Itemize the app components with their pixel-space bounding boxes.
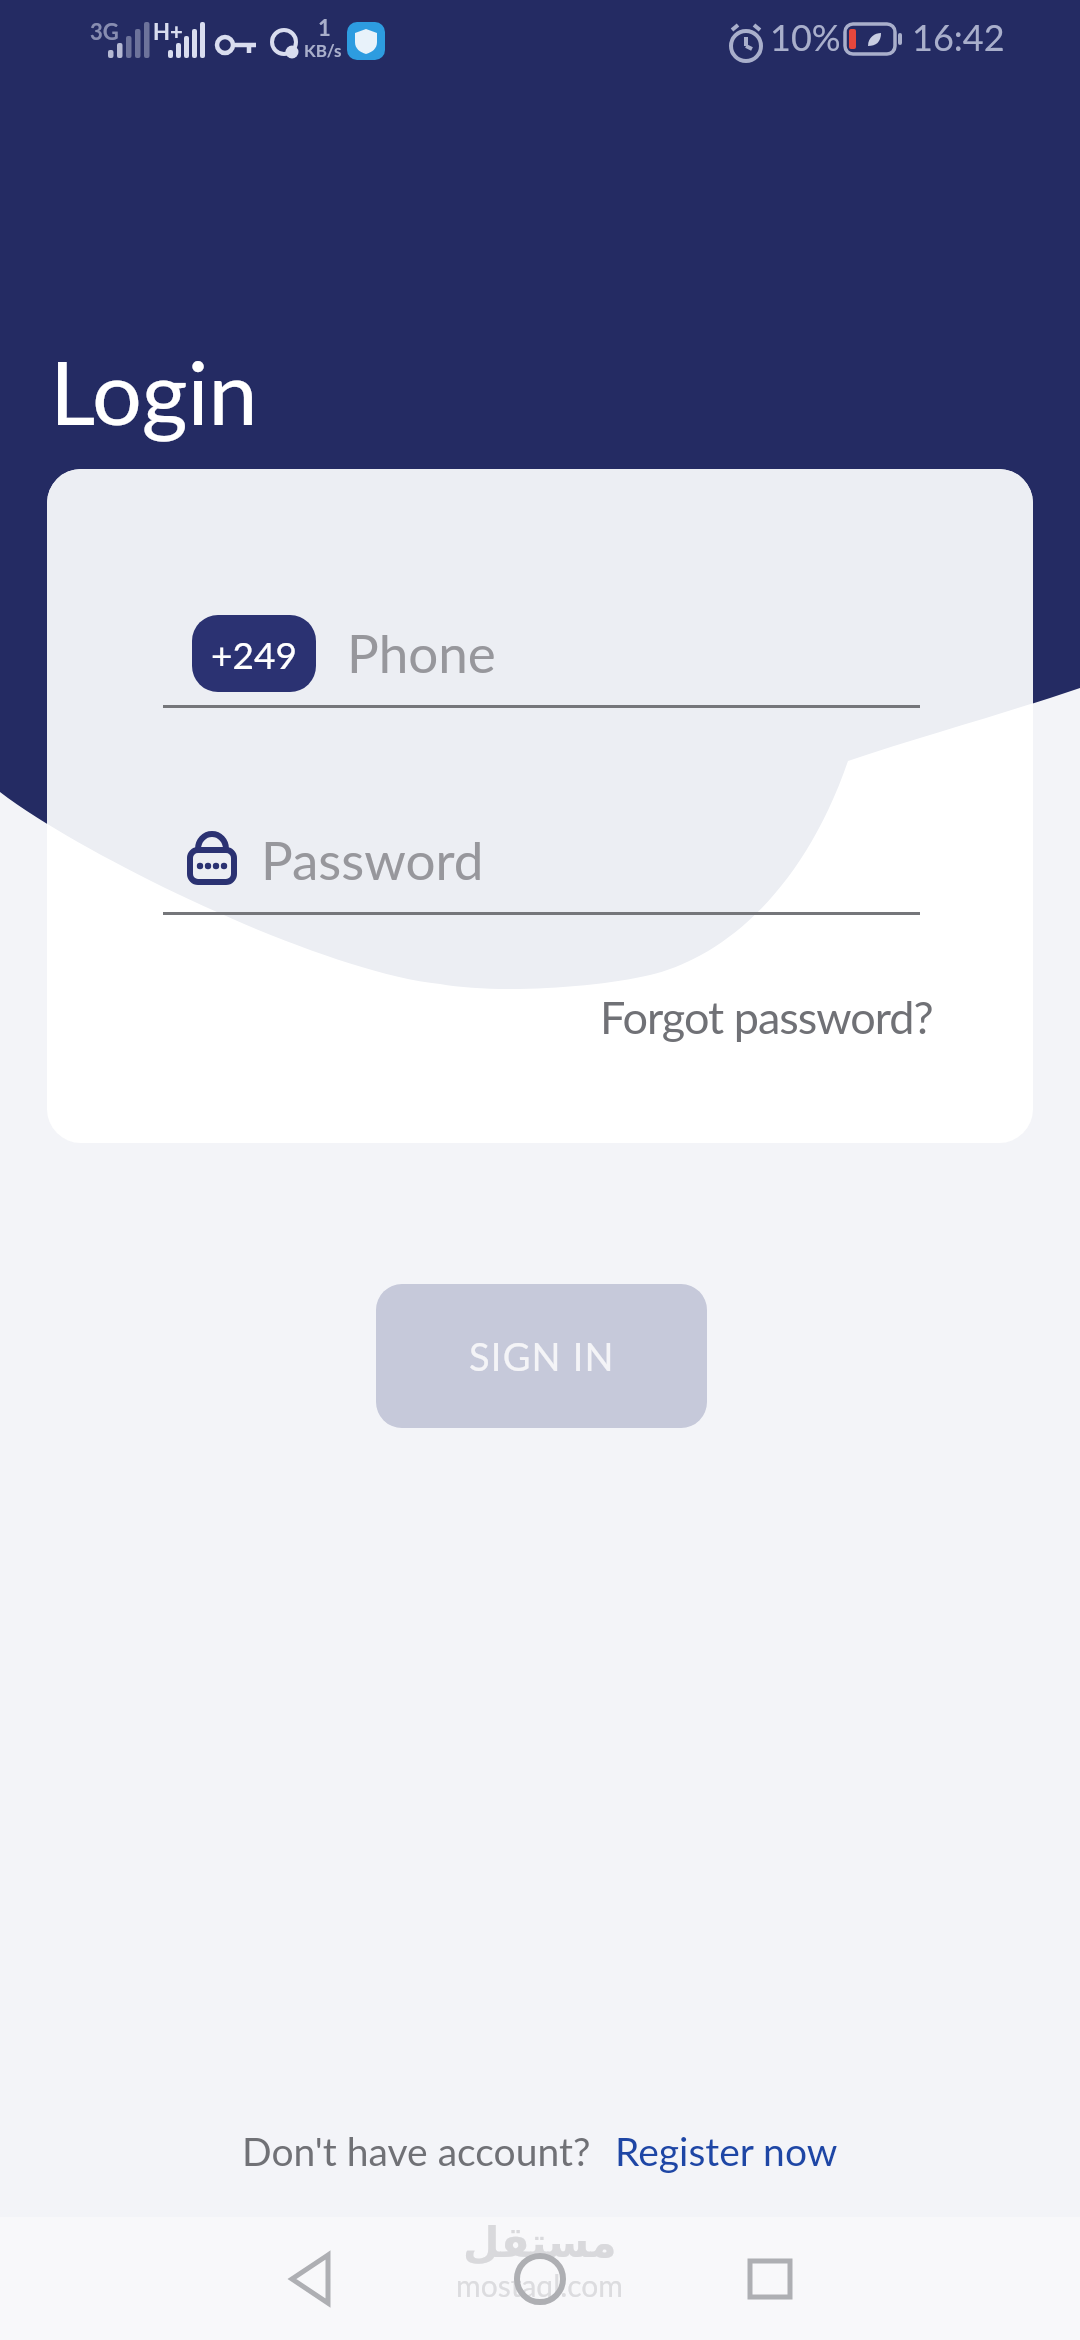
staticText: Login	[50, 338, 258, 444]
staticText: Don't have account?	[242, 2128, 591, 2175]
staticText: مستقل	[463, 2218, 617, 2267]
staticText: KB/s	[304, 40, 342, 60]
button[interactable]: SIGN IN	[376, 1284, 707, 1428]
staticText: Register now	[615, 2128, 838, 2175]
staticText: H+	[153, 18, 183, 44]
button[interactable]	[480, 2229, 600, 2329]
staticText: Phone	[347, 621, 496, 685]
staticText: Password	[261, 828, 484, 892]
button[interactable]: +249	[163, 600, 920, 708]
staticText: 3G	[90, 18, 119, 44]
staticText: 1	[318, 14, 331, 40]
button[interactable]: Forgot password?	[600, 990, 933, 1044]
staticText: +249	[211, 632, 297, 676]
staticText: SIGN IN	[469, 1333, 615, 1379]
staticText: 10%	[770, 15, 841, 58]
staticText: Forgot password?	[600, 990, 933, 1044]
button[interactable]: Password	[163, 822, 920, 915]
staticText: 16:42	[912, 15, 1005, 58]
staticText: mostaql.com	[456, 2267, 624, 2303]
button[interactable]	[250, 2229, 370, 2329]
button[interactable]: Register now	[615, 2128, 838, 2175]
button[interactable]	[710, 2229, 830, 2329]
